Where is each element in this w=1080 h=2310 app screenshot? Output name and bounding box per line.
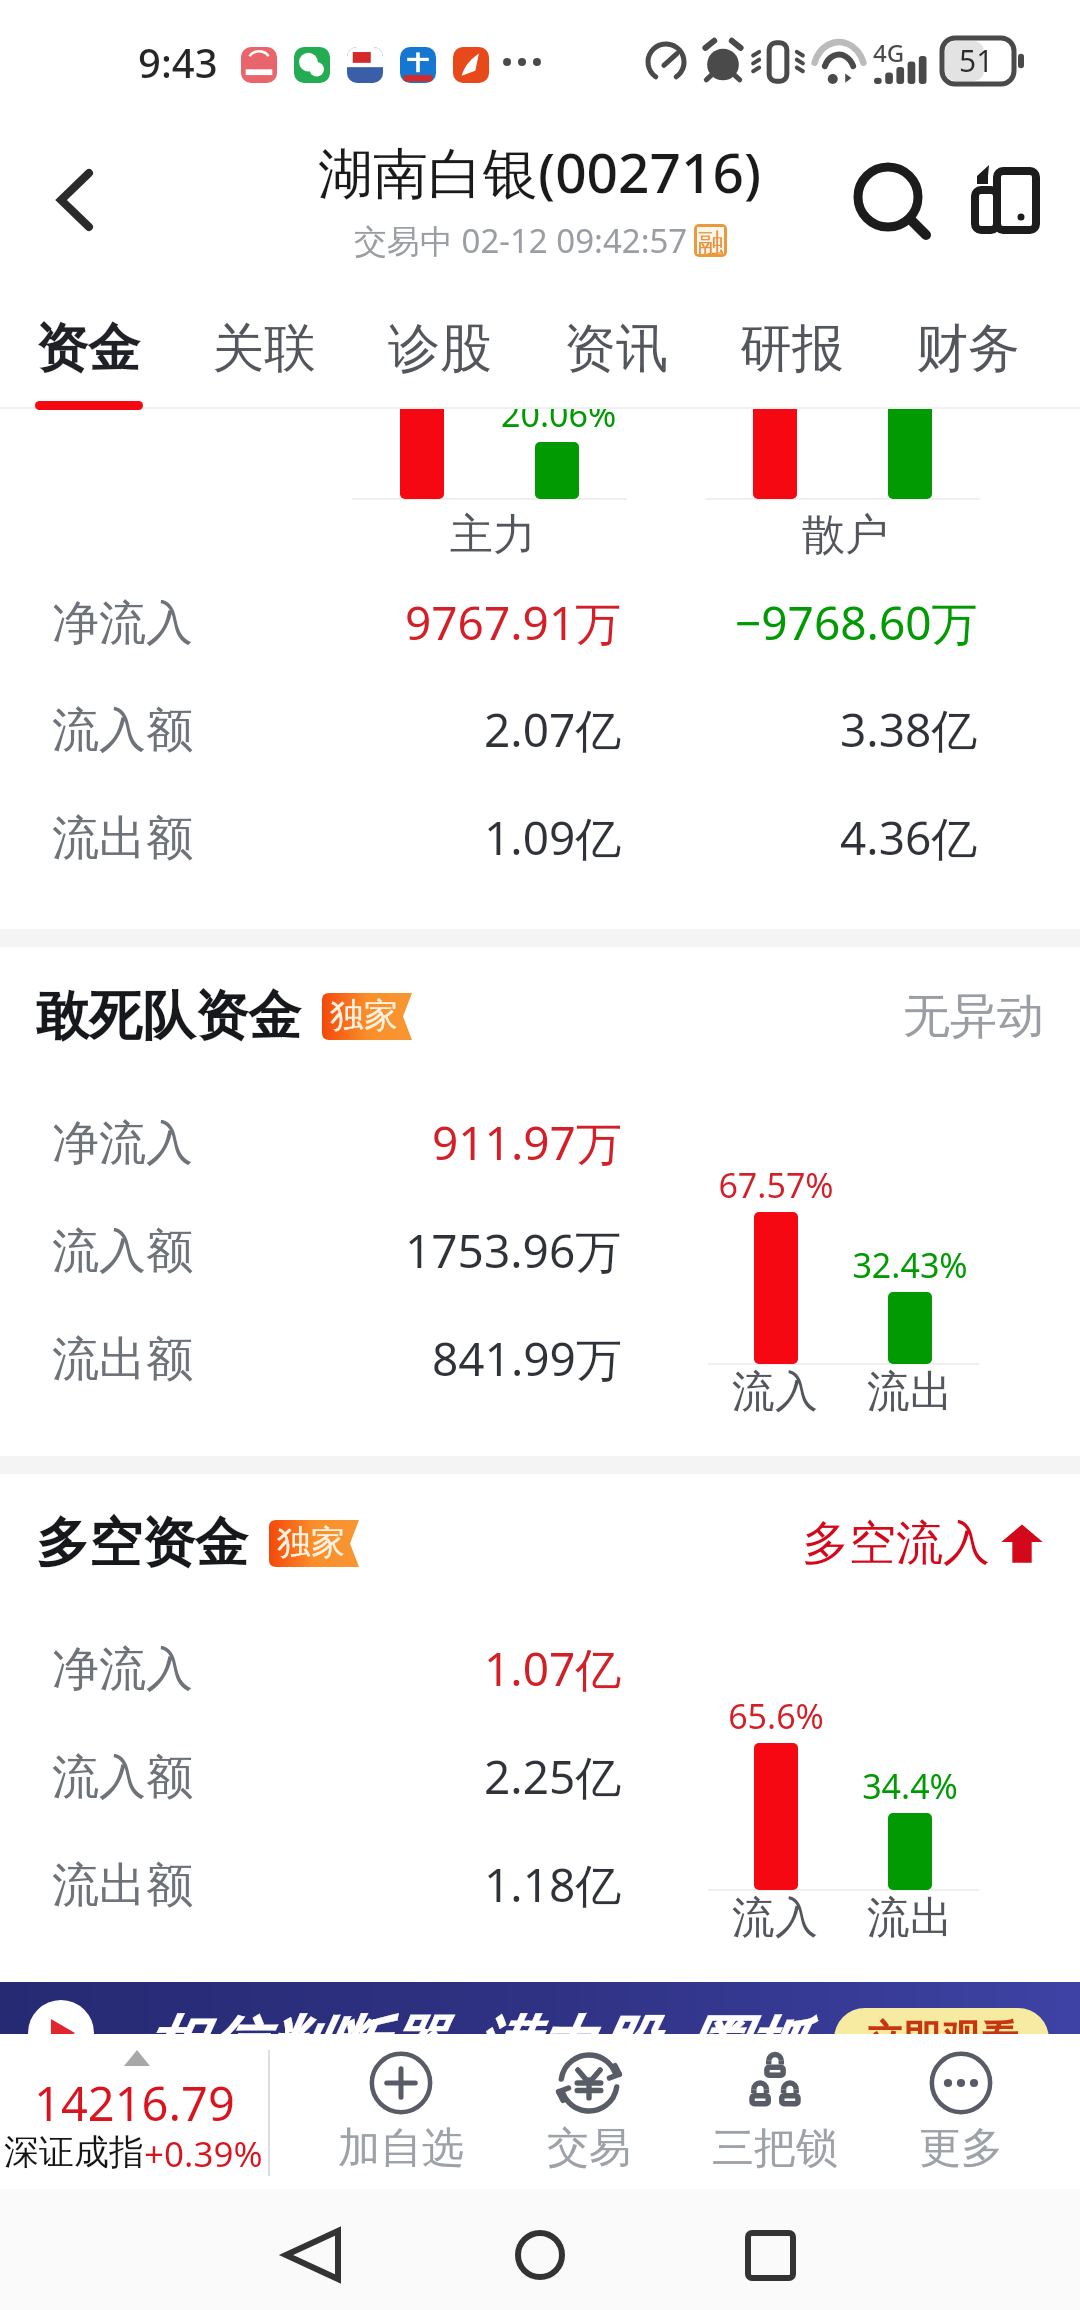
staticText: 关联 (212, 316, 316, 382)
button[interactable]: Switch layout (965, 160, 1047, 242)
staticText: 散户 (802, 508, 888, 562)
staticText: 多空流入 (802, 1514, 990, 1573)
staticText: 1753.96万 (405, 1219, 622, 1282)
button[interactable]: 14216.79 (0, 2034, 268, 2189)
staticText: 2.25亿 (484, 1745, 622, 1808)
staticText: 交易中 02-12 09:42:57 (354, 218, 688, 263)
staticText: 841.99万 (432, 1327, 622, 1390)
staticText: 51 (959, 40, 994, 81)
staticText: 交易 (547, 2122, 631, 2175)
staticText: 资金 (36, 316, 140, 382)
staticText: 相信判断器 潜力股 圈抓 (140, 2001, 803, 2083)
staticText: 3.38亿 (840, 698, 978, 761)
staticText: 净流入 (52, 594, 193, 653)
staticText: 净流入 (52, 1640, 193, 1699)
staticText: 32.43% (852, 1242, 968, 1288)
staticText: 资讯 (564, 316, 668, 382)
staticText: 主力 (450, 508, 536, 562)
staticText: 14216.79 (34, 2071, 235, 2135)
staticText: 独家 (330, 994, 398, 1037)
staticText: 流出额 (52, 1330, 193, 1389)
staticText: 34.4% (862, 1763, 958, 1809)
staticText: 流出额 (52, 1856, 193, 1915)
staticText: 65.6% (728, 1693, 824, 1739)
button[interactable]: 资讯 (528, 285, 704, 409)
staticText: 流入额 (52, 1748, 193, 1807)
staticText: 敢死队资金 (36, 983, 301, 1050)
button[interactable]: 相信判断器 潜力股 圈抓 (0, 1982, 1080, 2112)
staticText: 流出额 (52, 809, 193, 868)
staticText: 4G (873, 36, 905, 69)
staticText: 诊股 (388, 316, 492, 382)
staticText: 4.36亿 (840, 806, 978, 869)
button[interactable]: 关联 (176, 285, 352, 409)
button[interactable]: 财务 (880, 285, 1056, 409)
staticText: 融 (698, 227, 724, 254)
staticText: 更多 (919, 2122, 1003, 2175)
button[interactable]: 敢死队资金 (36, 981, 412, 1051)
staticText: 流入 (732, 1365, 818, 1419)
button[interactable]: Back (21, 147, 131, 257)
button[interactable]: 研报 (704, 285, 880, 409)
staticText: 无异动 (903, 987, 1044, 1046)
staticText: 流入额 (52, 1222, 193, 1281)
staticText: 9767.91万 (405, 591, 622, 654)
staticText: 三把锁 (712, 2122, 838, 2175)
button[interactable]: 多空资金 (36, 1508, 359, 1578)
button[interactable]: 诊股 (352, 285, 528, 409)
button[interactable]: 更多 (866, 2040, 1056, 2188)
staticText: 911.97万 (432, 1111, 622, 1174)
button[interactable]: Recent apps (710, 2195, 830, 2310)
staticText: 立即观看 (866, 2015, 1018, 2063)
staticText: 净流入 (52, 1114, 193, 1173)
button[interactable]: Back (252, 2195, 372, 2310)
button[interactable]: 三把锁 (680, 2040, 870, 2188)
staticText: 1.18亿 (484, 1853, 622, 1916)
staticText: 流入 (732, 1891, 818, 1945)
staticText: +0.39% (144, 2130, 263, 2178)
staticText: 67.57% (718, 1162, 834, 1208)
button[interactable]: Search (833, 142, 943, 252)
button[interactable]: 加自选 (306, 2040, 496, 2188)
staticText: 湖南白银(002716) (318, 134, 762, 209)
staticText: 流入额 (52, 701, 193, 760)
staticText: 研报 (740, 316, 844, 382)
staticText: 9:43 (138, 35, 218, 89)
staticText: 独家 (277, 1521, 345, 1564)
staticText: 1.07亿 (484, 1637, 622, 1700)
staticText: 流出 (867, 1891, 953, 1945)
staticText: 财务 (916, 316, 1020, 382)
staticText: 深证成指 (4, 2130, 144, 2174)
staticText: 20.06% (501, 391, 617, 437)
staticText: 流出 (867, 1365, 953, 1419)
button[interactable]: 立即观看 (834, 2008, 1049, 2070)
staticText: 1.09亿 (484, 806, 622, 869)
staticText: 2.07亿 (484, 698, 622, 761)
button[interactable]: 交易 (494, 2040, 684, 2188)
button[interactable]: Home (480, 2195, 600, 2310)
staticText: −9768.60万 (735, 591, 978, 654)
button[interactable]: 资金 (0, 285, 176, 409)
staticText: 多空资金 (36, 1510, 248, 1577)
staticText: 加自选 (338, 2122, 464, 2175)
